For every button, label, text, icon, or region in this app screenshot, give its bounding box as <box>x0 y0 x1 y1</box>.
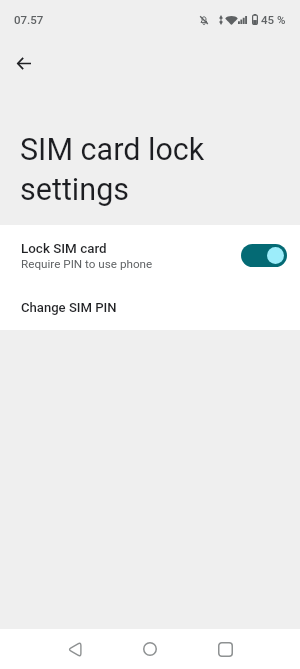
button[interactable]: Change SIM PIN <box>0 283 300 330</box>
button[interactable]: Lock SIM card <box>241 244 287 267</box>
staticText: 07.57 <box>14 13 44 26</box>
button[interactable]: Lock SIM card <box>0 225 300 283</box>
button[interactable]: Recent apps <box>187 629 262 669</box>
button[interactable]: Back <box>3 43 44 84</box>
staticText: Lock SIM card <box>21 241 107 257</box>
button[interactable]: Home <box>112 629 187 669</box>
staticText: SIM card lock settings <box>20 132 260 208</box>
staticText: Change SIM PIN <box>21 300 117 315</box>
button[interactable]: Back <box>38 629 112 669</box>
staticText: Require PIN to use phone <box>21 257 153 271</box>
staticText: 45 % <box>261 13 286 26</box>
